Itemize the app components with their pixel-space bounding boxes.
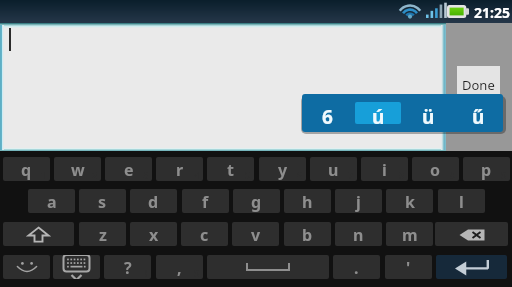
button[interactable]: 6 bbox=[304, 102, 351, 124]
staticText: m bbox=[402, 224, 418, 246]
staticText: o bbox=[430, 159, 441, 181]
staticText: ? bbox=[124, 257, 132, 279]
button[interactable]: m bbox=[386, 222, 433, 246]
button[interactable]: . bbox=[333, 255, 380, 279]
staticText: k bbox=[405, 191, 415, 213]
button[interactable]: , bbox=[156, 255, 203, 279]
button[interactable]: Done bbox=[457, 66, 500, 100]
staticText: e bbox=[124, 159, 134, 181]
button[interactable]: c bbox=[181, 222, 228, 246]
button[interactable]: Emoji bbox=[3, 255, 50, 279]
button[interactable]: g bbox=[233, 189, 280, 213]
staticText: , bbox=[177, 257, 182, 279]
staticText: l bbox=[459, 191, 464, 213]
button[interactable]: k bbox=[386, 189, 433, 213]
button[interactable]: Backspace bbox=[435, 222, 508, 246]
staticText: s bbox=[98, 191, 107, 213]
other: Battery bbox=[447, 5, 469, 18]
button[interactable]: v bbox=[232, 222, 279, 246]
button[interactable]: z bbox=[79, 222, 126, 246]
button[interactable]: p bbox=[463, 157, 510, 181]
staticText: Done bbox=[462, 76, 495, 94]
button[interactable]: ü bbox=[405, 102, 451, 124]
staticText: t bbox=[227, 159, 234, 181]
staticText: d bbox=[148, 191, 159, 213]
staticText: ű bbox=[472, 104, 485, 124]
staticText: p bbox=[481, 159, 492, 181]
staticText: 21:25 bbox=[474, 3, 510, 22]
button[interactable]: b bbox=[284, 222, 331, 246]
button[interactable]: x bbox=[130, 222, 177, 246]
button[interactable]: h bbox=[284, 189, 331, 213]
staticText: ü bbox=[422, 104, 435, 124]
staticText: 6 bbox=[322, 104, 333, 124]
button[interactable]: ű bbox=[455, 102, 501, 124]
staticText: b bbox=[302, 224, 313, 246]
button[interactable]: a bbox=[28, 189, 75, 213]
staticText: . bbox=[354, 257, 359, 279]
staticText: u bbox=[328, 159, 339, 181]
staticText: c bbox=[200, 224, 209, 246]
other: Wi-Fi bbox=[399, 3, 421, 19]
staticText: a bbox=[47, 191, 57, 213]
staticText: ú bbox=[372, 104, 385, 124]
button[interactable]: s bbox=[79, 189, 126, 213]
button[interactable]: w bbox=[54, 157, 101, 181]
button[interactable]: l bbox=[438, 189, 485, 213]
button[interactable]: Enter bbox=[436, 255, 507, 279]
button[interactable]: j bbox=[335, 189, 382, 213]
button[interactable]: r bbox=[156, 157, 203, 181]
button[interactable]: n bbox=[335, 222, 382, 246]
button[interactable]: f bbox=[182, 189, 229, 213]
staticText: z bbox=[99, 224, 107, 246]
button[interactable]: u bbox=[310, 157, 357, 181]
button[interactable]: ? bbox=[104, 255, 151, 279]
button[interactable]: t bbox=[207, 157, 254, 181]
staticText: q bbox=[21, 159, 32, 181]
button[interactable]: q bbox=[3, 157, 50, 181]
staticText: r bbox=[176, 159, 184, 181]
button[interactable]: i bbox=[361, 157, 408, 181]
button[interactable]: y bbox=[259, 157, 306, 181]
staticText: h bbox=[302, 191, 313, 213]
button[interactable]: ' bbox=[385, 255, 432, 279]
staticText: v bbox=[251, 224, 261, 246]
button[interactable]: Switch keyboard bbox=[53, 255, 100, 279]
staticText: y bbox=[278, 159, 288, 181]
other: Signal strength bbox=[425, 2, 444, 19]
button[interactable]: e bbox=[105, 157, 152, 181]
staticText: w bbox=[71, 159, 85, 181]
button[interactable]: d bbox=[130, 189, 177, 213]
staticText: i bbox=[382, 159, 387, 181]
button[interactable]: o bbox=[412, 157, 459, 181]
button[interactable] bbox=[0, 22, 446, 151]
staticText: ' bbox=[406, 257, 411, 279]
staticText: g bbox=[251, 191, 262, 213]
staticText: f bbox=[202, 191, 209, 213]
button[interactable]: ú bbox=[355, 102, 401, 124]
staticText: j bbox=[356, 191, 361, 213]
staticText: n bbox=[353, 224, 364, 246]
button[interactable]: Shift bbox=[3, 222, 74, 246]
button[interactable]: Space bbox=[207, 255, 329, 279]
staticText: x bbox=[149, 224, 159, 246]
